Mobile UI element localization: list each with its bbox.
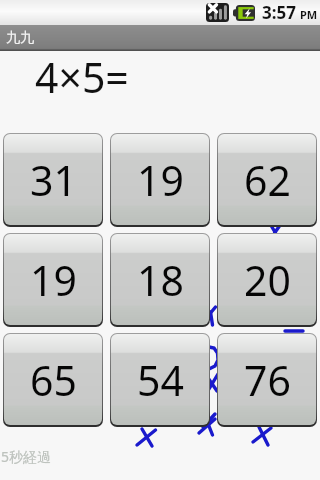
button[interactable]: 19 (4, 234, 102, 325)
staticText: 20 (244, 252, 291, 308)
button[interactable]: 65 (4, 334, 102, 425)
staticText: 76 (244, 352, 291, 408)
staticText: 19 (30, 252, 77, 308)
other: Battery charging (233, 5, 255, 21)
button[interactable]: 九九 (0, 25, 320, 51)
staticText: 5秒経過 (1, 447, 52, 466)
button[interactable]: 18 (111, 234, 209, 325)
button[interactable]: 19 (111, 134, 209, 225)
button[interactable]: 62 (218, 134, 316, 225)
staticText: 19 (137, 152, 184, 208)
other: Signal strength (206, 3, 229, 22)
staticText: 九九 (6, 29, 34, 47)
staticText: 31 (30, 152, 77, 208)
button[interactable]: 31 (4, 134, 102, 225)
staticText: 62 (244, 152, 291, 208)
staticText: 3:57 (262, 1, 296, 24)
staticText: 54 (137, 352, 184, 408)
button[interactable]: 76 (218, 334, 316, 425)
staticText: PM (300, 7, 318, 22)
staticText: 4×5= (35, 49, 129, 105)
staticText: 65 (30, 352, 77, 408)
button[interactable]: 20 (218, 234, 316, 325)
button[interactable]: 54 (111, 334, 209, 425)
staticText: 18 (137, 252, 184, 308)
